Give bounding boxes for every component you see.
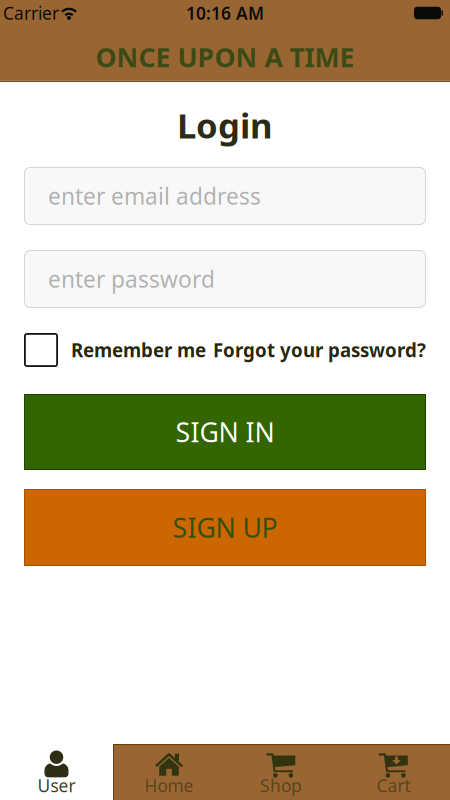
button[interactable]: Forgot your password? [213,338,426,362]
staticText: 10:16 AM [186,1,264,24]
staticText: Home [144,774,193,797]
staticText: ONCE UPON A TIME [95,39,354,75]
staticText: Shop [260,774,302,797]
staticText: enter password [48,264,215,294]
staticText: Carrier [3,1,59,24]
button[interactable]: Remember me [24,333,206,367]
staticText: Login [177,102,273,148]
staticText: enter email address [48,181,261,211]
button[interactable]: Cart [337,744,450,800]
textField[interactable]: enter email address [24,167,426,225]
button[interactable]: Home [113,744,225,800]
textField[interactable]: enter password [24,250,426,308]
staticText: Cart [376,774,410,797]
staticText: Forgot your password? [213,338,426,362]
staticText: SIGN IN [175,414,274,450]
staticText: Remember me [71,338,206,362]
button[interactable]: Shop [225,744,337,800]
button[interactable]: SIGN UP [24,489,426,566]
button[interactable]: SIGN IN [24,394,426,470]
button[interactable]: User [0,744,113,800]
staticText: User [37,774,75,797]
staticText: SIGN UP [172,510,277,545]
